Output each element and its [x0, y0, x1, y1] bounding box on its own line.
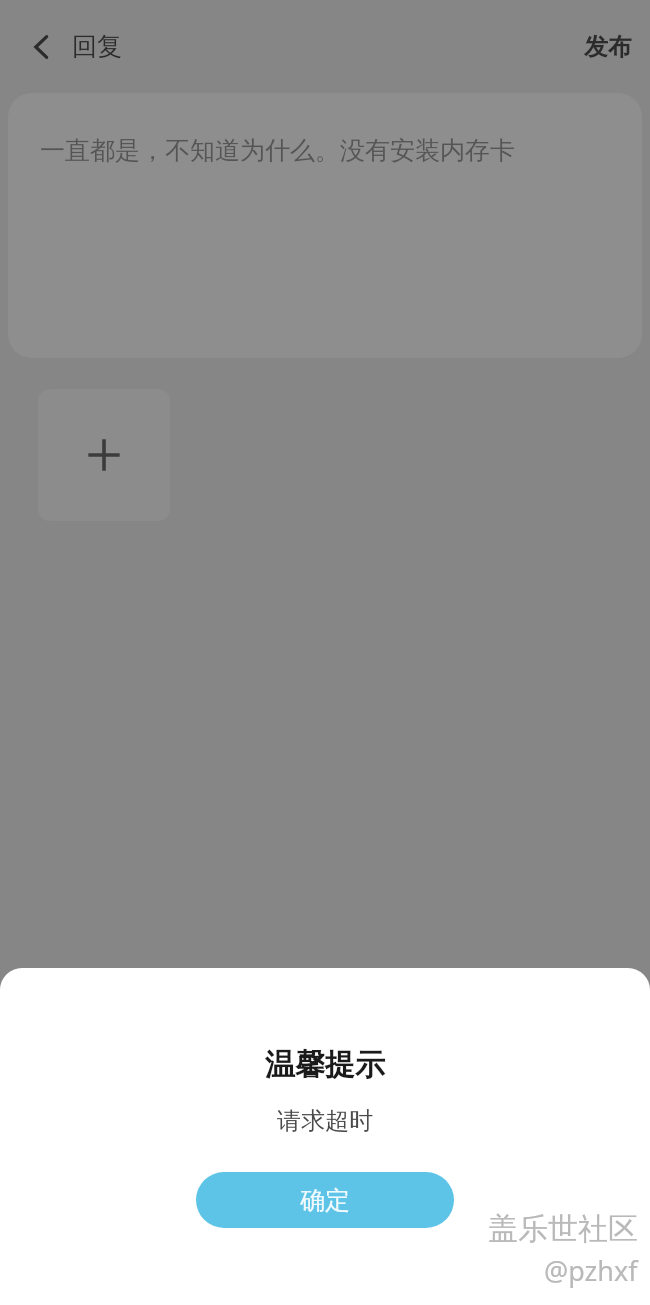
staticText: 温馨提示 [265, 1046, 385, 1084]
staticText: 请求超时 [277, 1106, 373, 1136]
staticText: 发布 [584, 32, 632, 62]
button[interactable]: Add image [38, 389, 170, 521]
button[interactable]: 发布 [566, 18, 650, 76]
button[interactable]: 一直都是，不知道为什么。没有安装内存卡 [8, 93, 642, 358]
staticText: 确定 [300, 1185, 350, 1216]
staticText: @pzhxf [544, 1252, 638, 1289]
staticText: 一直都是，不知道为什么。没有安装内存卡 [40, 135, 515, 166]
staticText: 盖乐世社区 [488, 1210, 638, 1248]
staticText: 回复 [72, 31, 122, 62]
button[interactable]: 确定 [196, 1172, 454, 1228]
button[interactable]: Back [14, 19, 70, 75]
